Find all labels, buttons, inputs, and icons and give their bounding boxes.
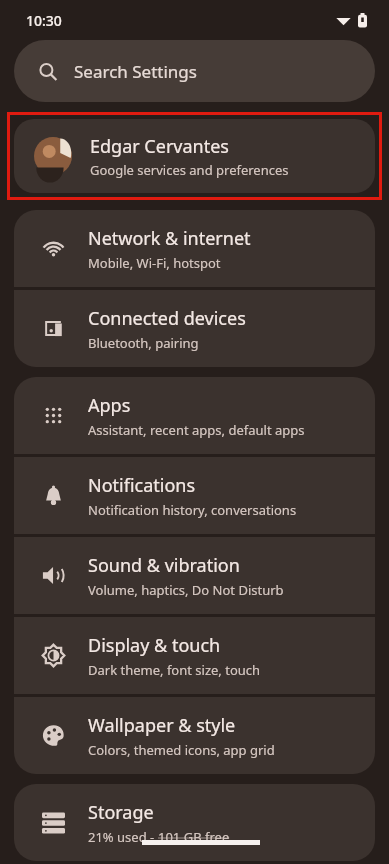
staticText: Assistant, recent apps, default apps [88, 421, 305, 439]
staticText: Mobile, Wi-Fi, hotspot [88, 254, 221, 272]
button[interactable]: Display and touch [14, 617, 375, 694]
other: Display and touch [42, 644, 65, 667]
button[interactable]: Notifications [14, 457, 375, 534]
staticText: 10:30 [26, 11, 62, 30]
staticText: Apps [88, 393, 131, 418]
staticText: 101 GB free [158, 828, 230, 846]
staticText: Connected devices [88, 306, 246, 331]
button[interactable]: Network and internet [14, 210, 375, 287]
other: Connected devices [42, 317, 65, 340]
staticText: Dark theme, font size, touch [88, 661, 261, 679]
staticText: Bluetooth, pairing [88, 334, 199, 352]
other: Apps [42, 404, 65, 427]
button[interactable]: Storage [14, 784, 375, 861]
staticText: Search Settings [74, 60, 197, 83]
staticText: Storage [88, 800, 154, 825]
staticText: Notification history, conversations [88, 501, 297, 519]
staticText: Wallpaper & style [88, 713, 236, 738]
button[interactable]: Sound and vibration [14, 537, 375, 614]
staticText: Display & touch [88, 633, 221, 658]
button[interactable]: Search Settings [14, 40, 375, 102]
staticText: Notifications [88, 473, 196, 498]
other: Network and internet [42, 237, 65, 260]
staticText: Sound & vibration [88, 553, 240, 578]
button[interactable]: Apps [14, 377, 375, 454]
other: Notifications [42, 484, 65, 507]
staticText: 21% used - [88, 828, 158, 846]
button[interactable]: Wallpaper and style [14, 697, 375, 774]
other: Wallpaper and style [42, 724, 65, 747]
staticText: Network & internet [88, 226, 251, 251]
staticText: Volume, haptics, Do Not Disturb [88, 581, 284, 599]
button[interactable]: Edgar Cervantes [14, 119, 375, 193]
other: Sound and vibration [42, 564, 65, 587]
other: Storage [42, 811, 65, 834]
staticText: Edgar Cervantes [90, 134, 229, 159]
staticText: Colors, themed icons, app grid [88, 741, 275, 759]
staticText: Google services and preferences [90, 161, 289, 179]
button[interactable]: Connected devices [14, 290, 375, 367]
